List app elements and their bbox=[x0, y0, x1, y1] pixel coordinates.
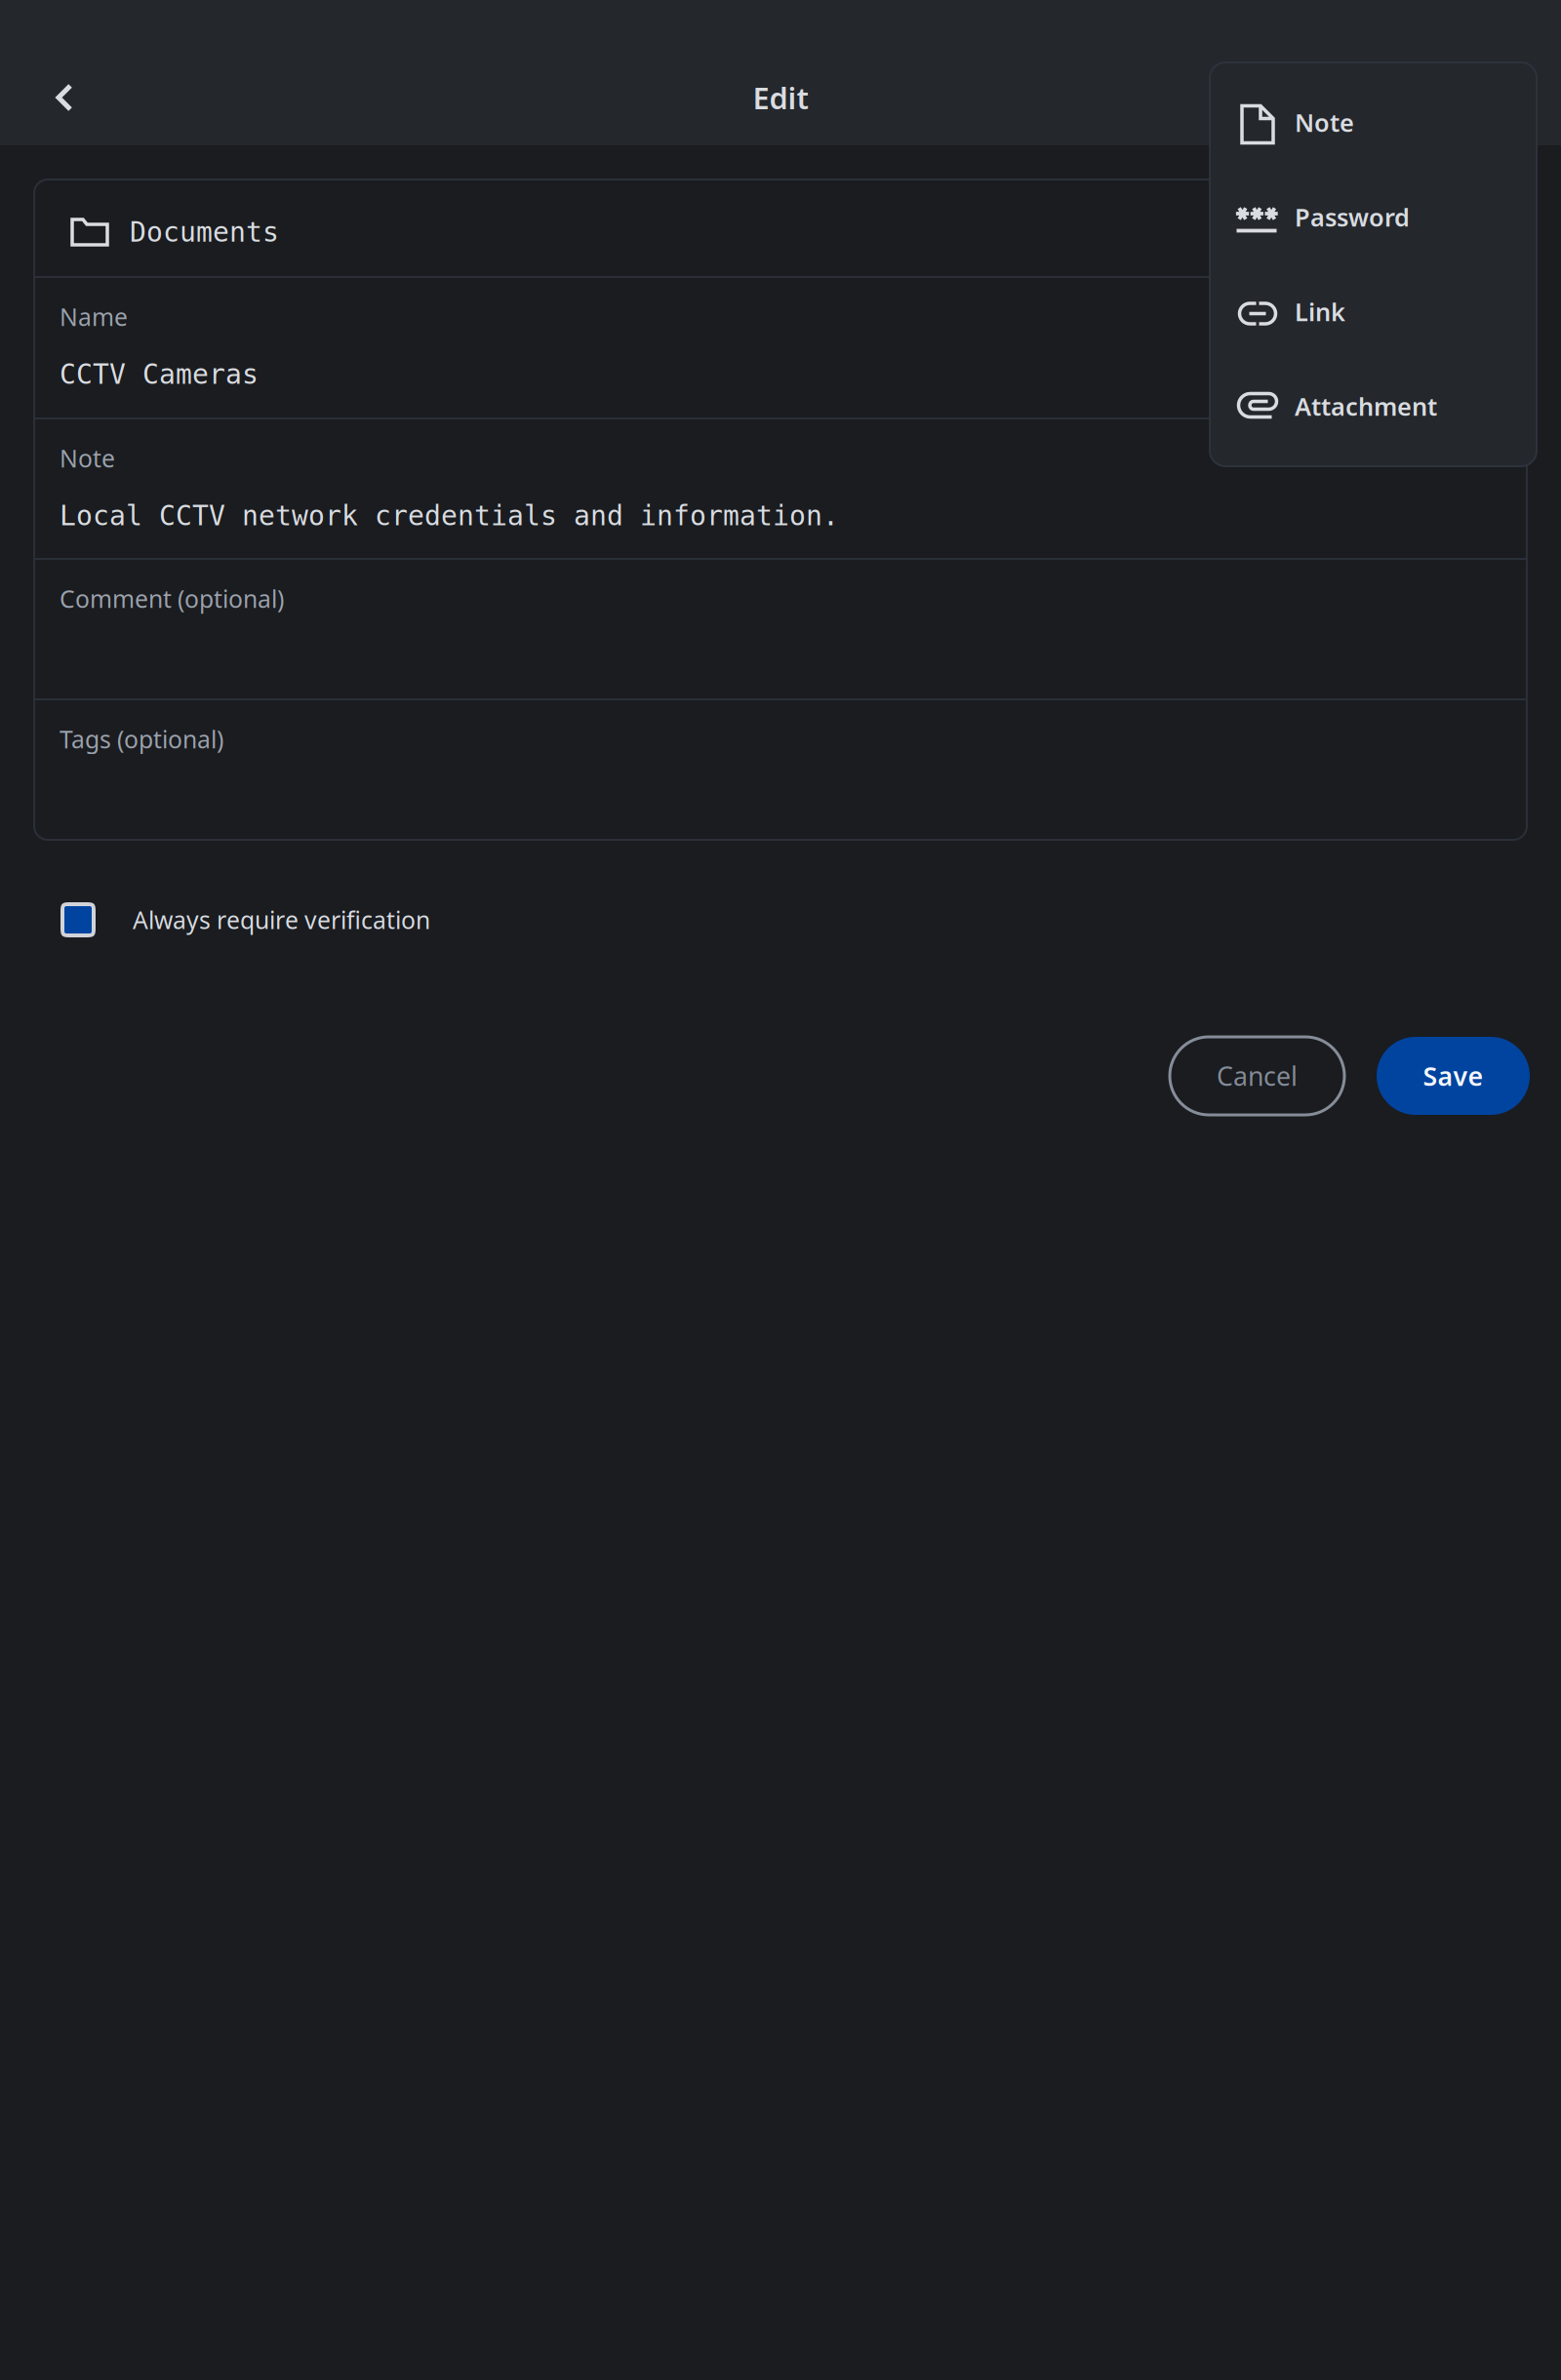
button[interactable]: Note bbox=[1210, 75, 1537, 170]
staticText: Note bbox=[1295, 106, 1354, 139]
button[interactable]: Attachment bbox=[1210, 359, 1537, 454]
staticText: Edit bbox=[753, 78, 808, 117]
staticText: Always require verification bbox=[133, 903, 430, 936]
button[interactable]: Tags (optional) bbox=[34, 700, 1527, 841]
staticText: Password bbox=[1295, 201, 1410, 233]
button[interactable]: Comment (optional) bbox=[34, 560, 1527, 698]
staticText: Name bbox=[60, 300, 128, 333]
staticText: CCTV Cameras bbox=[60, 359, 259, 390]
button[interactable]: Cancel bbox=[1170, 1037, 1344, 1115]
staticText: Local CCTV network credentials and infor… bbox=[60, 500, 839, 531]
staticText: Link bbox=[1295, 295, 1345, 328]
staticText: Attachment bbox=[1295, 390, 1437, 423]
staticText: Comment (optional) bbox=[60, 582, 284, 615]
button[interactable]: Note bbox=[34, 419, 1527, 558]
button[interactable]: Link bbox=[1210, 264, 1537, 359]
button[interactable]: Save bbox=[1377, 1037, 1530, 1115]
staticText: Cancel bbox=[1217, 1059, 1298, 1093]
button[interactable]: Back bbox=[23, 57, 105, 139]
staticText: Note bbox=[60, 442, 115, 475]
button[interactable]: Documents bbox=[34, 178, 1527, 276]
staticText: Tags (optional) bbox=[60, 723, 223, 756]
button[interactable]: Always require verification bbox=[60, 891, 548, 949]
button[interactable]: Name bbox=[34, 278, 1527, 417]
button[interactable]: Password bbox=[1210, 170, 1537, 264]
staticText: Documents bbox=[130, 217, 279, 248]
staticText: Save bbox=[1423, 1059, 1483, 1093]
